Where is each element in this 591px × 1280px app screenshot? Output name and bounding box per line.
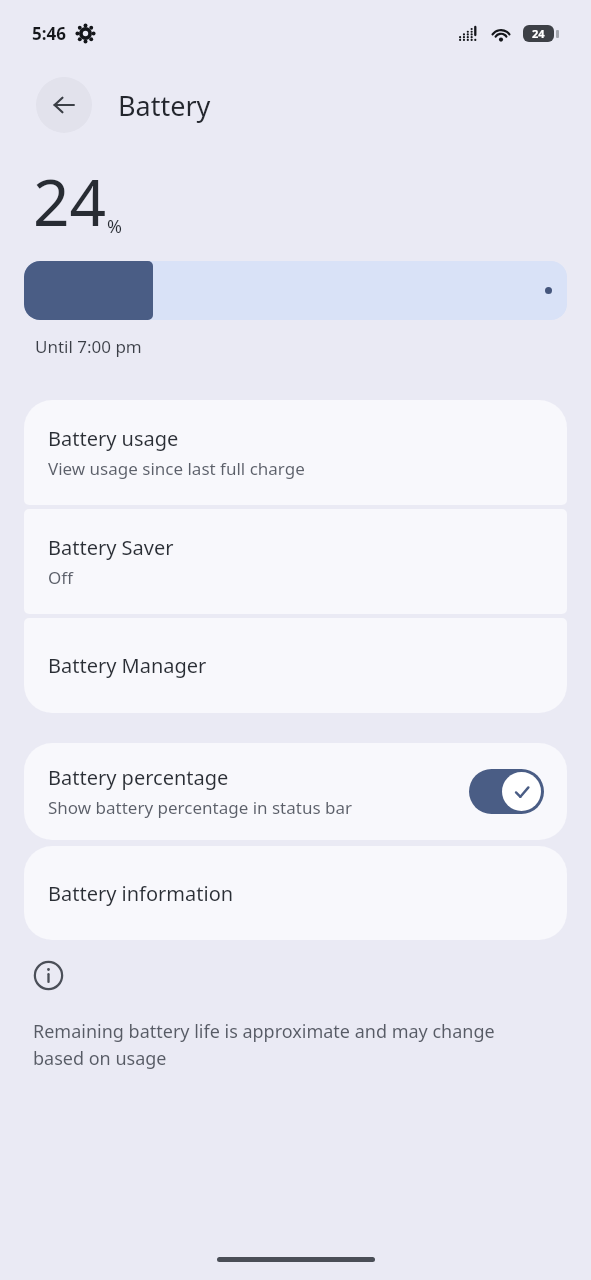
staticText: Off xyxy=(48,566,73,589)
staticText: Remaining battery life is approximate an… xyxy=(33,1019,546,1070)
staticText: Battery usage xyxy=(48,425,179,452)
button[interactable]: Battery usage xyxy=(24,400,567,505)
staticText: 24 xyxy=(532,26,545,41)
staticText: Battery information xyxy=(48,880,234,907)
button[interactable]: Battery percentage xyxy=(24,743,567,840)
staticText: 24 xyxy=(33,158,107,245)
staticText: View usage since last full charge xyxy=(48,457,305,480)
button[interactable]: Battery Manager xyxy=(24,618,567,713)
button[interactable]: Battery information xyxy=(24,846,567,940)
staticText: 5:46 xyxy=(32,22,66,45)
staticText: Battery xyxy=(118,87,211,124)
staticText: Show battery percentage in status bar xyxy=(48,796,352,819)
button[interactable]: Battery percentage xyxy=(469,769,544,814)
button[interactable]: Battery Saver xyxy=(24,509,567,614)
staticText: Battery Saver xyxy=(48,534,174,561)
staticText: Until 7:00 pm xyxy=(35,335,142,358)
staticText: Battery Manager xyxy=(48,652,207,679)
staticText: % xyxy=(107,214,122,239)
button[interactable]: Back xyxy=(36,77,92,133)
staticText: Battery percentage xyxy=(48,764,229,791)
